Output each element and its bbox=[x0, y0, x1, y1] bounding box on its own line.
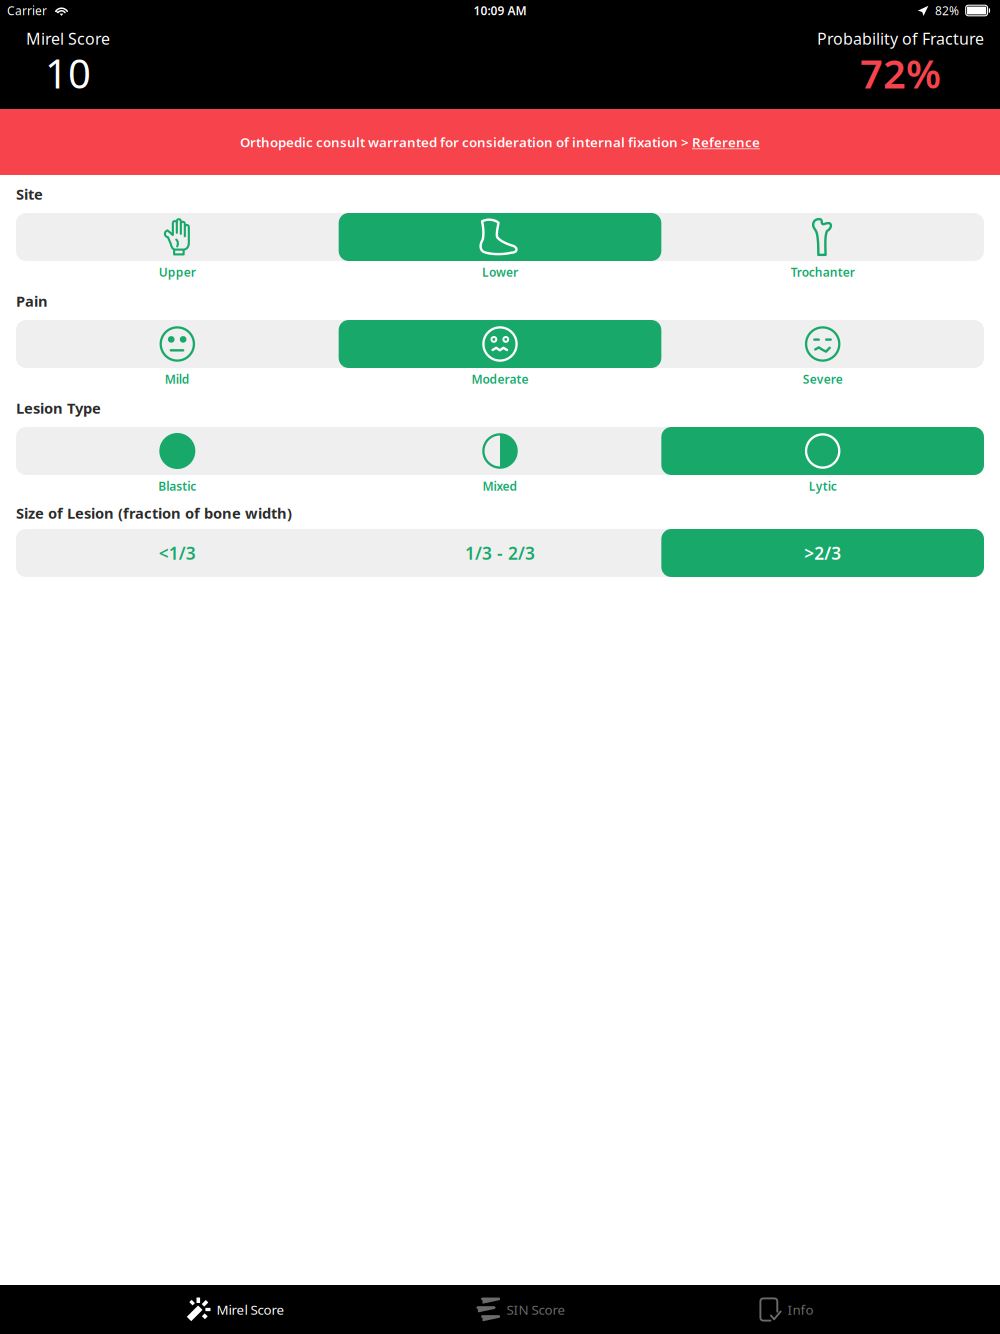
button[interactable]: Mirel Score bbox=[174, 1285, 296, 1334]
staticText: 72% bbox=[860, 46, 941, 99]
button[interactable]: <1/3 bbox=[16, 529, 339, 577]
staticText: Size of Lesion (fraction of bone width) bbox=[16, 503, 292, 523]
button[interactable]: >2/3 bbox=[661, 529, 984, 577]
staticText: Lesion Type bbox=[16, 398, 101, 418]
staticText: 82% bbox=[935, 2, 959, 18]
staticText: Severe bbox=[803, 371, 843, 387]
button[interactable]: Mild bbox=[16, 320, 339, 368]
button[interactable]: 1/3 - 2/3 bbox=[339, 529, 661, 577]
staticText: Info bbox=[787, 1301, 813, 1318]
button[interactable]: Trochanter bbox=[661, 213, 984, 261]
staticText: Site bbox=[16, 184, 43, 204]
staticText: >2/3 bbox=[804, 541, 841, 564]
staticText: Carrier bbox=[7, 2, 47, 18]
staticText: 1/3 - 2/3 bbox=[465, 541, 535, 564]
button[interactable]: Upper bbox=[16, 213, 339, 261]
staticText: SIN Score bbox=[506, 1301, 565, 1318]
button[interactable]: Moderate bbox=[339, 320, 661, 368]
staticText: Probability of Fracture bbox=[817, 28, 984, 49]
button[interactable]: Blastic bbox=[16, 427, 339, 475]
staticText: Mild bbox=[165, 371, 190, 387]
staticText: Upper bbox=[159, 264, 196, 280]
button[interactable]: Orthopedic consult warranted for conside… bbox=[0, 109, 1000, 175]
button[interactable]: Lower bbox=[339, 213, 661, 261]
button[interactable]: SIN Score bbox=[464, 1285, 577, 1334]
button[interactable]: Mixed bbox=[339, 427, 661, 475]
staticText: <1/3 bbox=[159, 541, 196, 564]
button[interactable]: Info bbox=[747, 1285, 825, 1334]
button[interactable]: Severe bbox=[661, 320, 984, 368]
staticText: Blastic bbox=[158, 478, 196, 494]
staticText: Reference bbox=[692, 133, 760, 151]
staticText: Moderate bbox=[471, 371, 528, 387]
staticText: 10:09 AM bbox=[473, 2, 526, 18]
staticText: Lower bbox=[482, 264, 518, 280]
staticText: 10 bbox=[45, 46, 91, 99]
staticText: Mixed bbox=[482, 478, 517, 494]
staticText: Trochanter bbox=[791, 264, 855, 280]
staticText: Orthopedic consult warranted for conside… bbox=[240, 133, 692, 151]
staticText: Lytic bbox=[809, 478, 837, 494]
staticText: Pain bbox=[16, 291, 48, 311]
staticText: Mirel Score bbox=[26, 28, 110, 49]
staticText: Mirel Score bbox=[216, 1301, 284, 1318]
button[interactable]: Lytic bbox=[661, 427, 984, 475]
